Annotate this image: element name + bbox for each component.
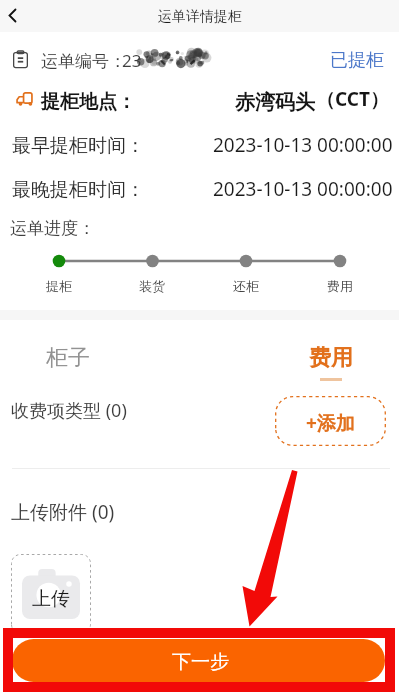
staticText: 柜子 [46,344,90,372]
staticText: 2023-10-13 00:00:00 [213,176,393,202]
staticText: 提柜地点： [41,90,136,114]
button[interactable]: 费用 [283,337,379,387]
staticText: 最晚提柜时间： [12,178,145,202]
staticText: 还柜 [233,278,259,294]
staticText: 上传附件 (0) [11,499,115,525]
staticText: 下一步 [172,650,229,674]
button[interactable]: 上传附件 [11,554,91,634]
staticText: 2023-10-13 00:00:00 [213,132,393,158]
staticText: （CCT） [316,86,389,112]
staticText: 提柜 [46,278,72,294]
staticText: +添加 [306,410,355,436]
staticText: 收费项类型 (0) [11,398,127,423]
staticText: 最早提柜时间： [12,134,145,158]
staticText: 费用 [327,278,353,294]
button[interactable]: 下一步 [12,639,385,682]
staticText: 已提柜 [330,49,384,72]
button[interactable]: Back [0,0,28,31]
staticText: 装货 [139,278,165,294]
button[interactable]: 已提柜 [322,47,392,73]
staticText: 运单进度： [10,218,95,239]
staticText: 赤湾码头 [235,90,315,115]
button[interactable]: 柜子 [20,336,116,386]
staticText: 运单编号： [41,51,126,72]
staticText: 费用 [309,344,353,372]
staticText: 运单详情提柜 [158,8,242,26]
staticText: 上传 [32,587,70,611]
button[interactable]: +添加 [275,396,386,446]
staticText: 23 [122,49,142,72]
